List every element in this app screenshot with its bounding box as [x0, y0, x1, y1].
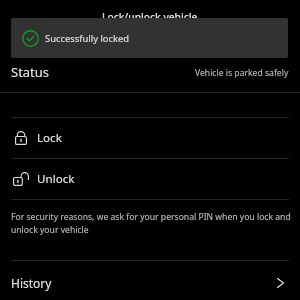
staticText: For security reasons, we ask for your pe…: [11, 211, 294, 236]
button[interactable]: Lock: [0, 118, 300, 158]
staticText: History: [11, 275, 52, 291]
staticText: Lock/unlock vehicle: [102, 10, 198, 24]
staticText: Status: [11, 63, 50, 81]
staticText: Vehicle is parked safely: [195, 67, 289, 79]
staticText: Successfully locked: [45, 32, 130, 45]
staticText: Unlock: [37, 171, 75, 187]
button[interactable]: Unlock: [0, 159, 300, 199]
staticText: Lock: [37, 130, 62, 146]
button[interactable]: History: [0, 261, 300, 300]
